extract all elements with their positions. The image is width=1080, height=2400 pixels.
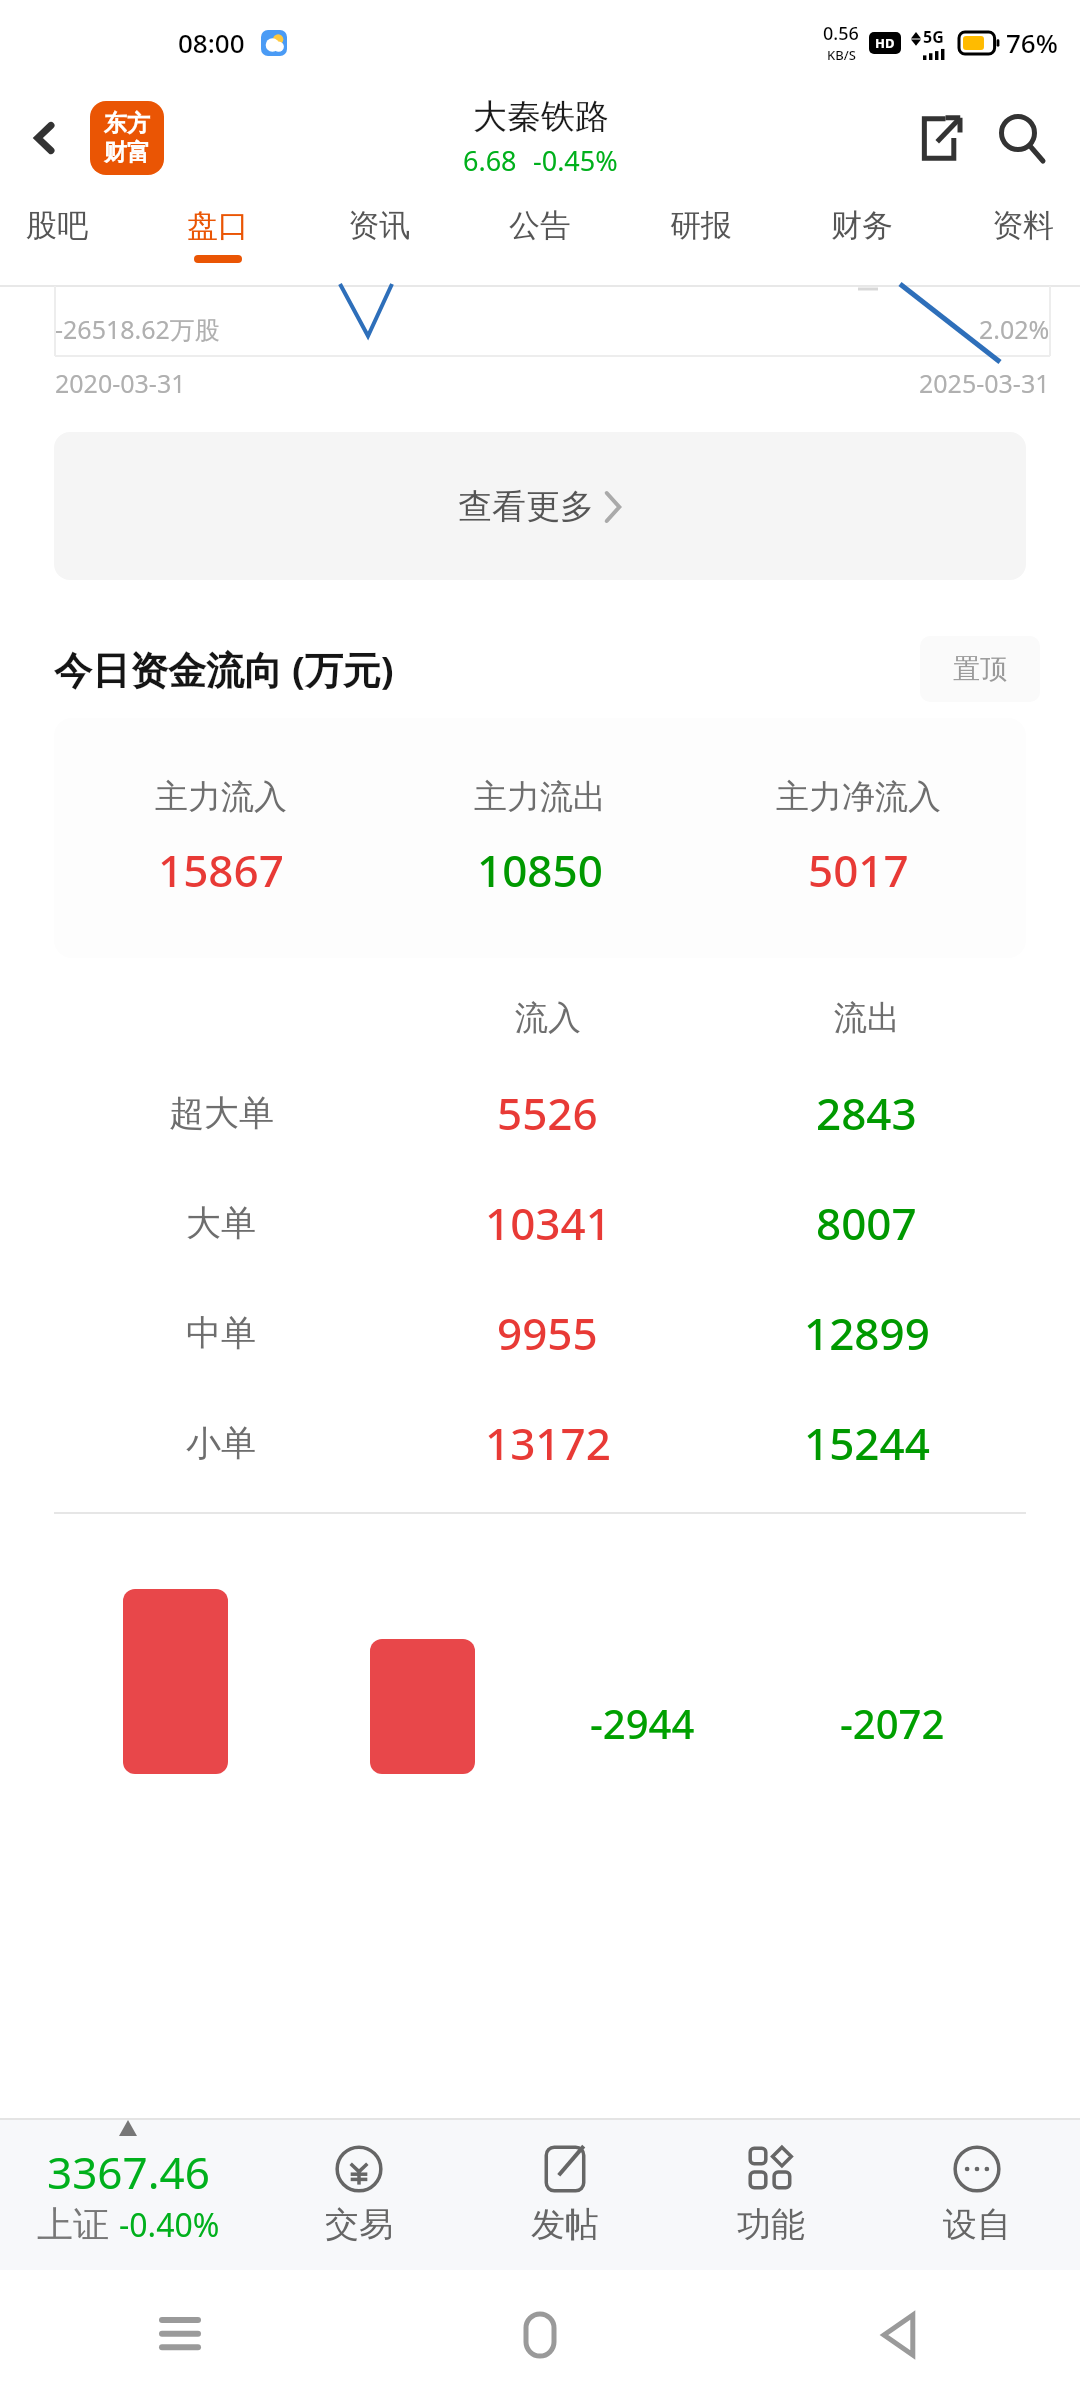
staticText: 6.68: [463, 142, 517, 179]
staticText: 3367.46: [47, 2142, 210, 2202]
button[interactable]: 公告: [509, 192, 571, 255]
button[interactable]: 盘口: [187, 192, 249, 263]
staticText: 9955: [497, 1303, 598, 1363]
staticText: 主力流出: [474, 776, 606, 818]
staticText: 5017: [808, 840, 909, 900]
staticText: 设自: [943, 2203, 1011, 2246]
staticText: 76%: [1006, 25, 1058, 60]
staticText: 15244: [804, 1413, 930, 1473]
button[interactable]: 资料: [992, 192, 1054, 255]
button[interactable]: Search: [984, 100, 1060, 176]
staticText: 小单: [186, 1421, 256, 1465]
button[interactable]: 资讯: [348, 192, 410, 255]
button[interactable]: Home: [360, 2270, 720, 2400]
button[interactable]: Recents: [0, 2270, 360, 2400]
staticText: 财务: [831, 206, 893, 245]
staticText: -26518.62万股: [55, 312, 220, 346]
staticText: 资讯: [348, 206, 410, 245]
staticText: 交易: [325, 2203, 393, 2246]
button[interactable]: 发帖: [462, 2118, 668, 2270]
staticText: -2944: [590, 1696, 695, 1750]
staticText: 股吧: [26, 206, 88, 245]
staticText: 10341: [485, 1193, 611, 1253]
button[interactable]: 财务: [831, 192, 893, 255]
staticText: -2072: [840, 1696, 945, 1750]
button[interactable]: 主力流入: [54, 718, 1026, 958]
staticText: 财富: [104, 138, 150, 167]
staticText: 13172: [485, 1413, 611, 1473]
staticText: -0.45%: [533, 142, 618, 179]
staticText: 大单: [186, 1201, 256, 1245]
button[interactable]: 3367.46: [0, 2118, 256, 2270]
button[interactable]: Share: [902, 100, 978, 176]
button[interactable]: 股吧: [26, 192, 88, 255]
staticText: 功能: [737, 2203, 805, 2246]
staticText: 查看更多: [458, 485, 594, 528]
staticText: 超大单: [169, 1091, 274, 1135]
staticText: 公告: [509, 206, 571, 245]
button[interactable]: 研报: [670, 192, 732, 255]
staticText: 大秦铁路: [473, 95, 609, 138]
staticText: 置顶: [953, 652, 1007, 686]
staticText: 2843: [816, 1083, 917, 1143]
staticText: 12899: [804, 1303, 930, 1363]
staticText: 流出: [834, 997, 900, 1039]
button[interactable]: Back: [720, 2270, 1080, 2400]
button[interactable]: 查看更多: [54, 432, 1026, 580]
button[interactable]: 超大单: [54, 1058, 1026, 1168]
staticText: 15867: [158, 840, 284, 900]
staticText: 研报: [670, 206, 732, 245]
staticText: 2020-03-31: [55, 366, 186, 394]
staticText: 5526: [497, 1083, 598, 1143]
staticText: 08:00: [178, 25, 245, 60]
staticText: 资料: [992, 206, 1054, 245]
staticText: 中单: [186, 1311, 256, 1355]
button[interactable]: 交易: [256, 2118, 462, 2270]
staticText: 主力净流入: [776, 776, 941, 818]
button[interactable]: 设自: [874, 2118, 1080, 2270]
staticText: 8007: [816, 1193, 917, 1253]
button[interactable]: 中单: [54, 1278, 1026, 1388]
staticText: 盘口: [187, 206, 249, 245]
button[interactable]: East Money: [90, 101, 164, 175]
staticText: 今日资金流向 (万元): [54, 643, 394, 695]
staticText: 主力流入: [155, 776, 287, 818]
staticText: 东方: [104, 109, 150, 138]
staticText: 5G: [923, 26, 944, 48]
button[interactable]: Back: [12, 105, 78, 171]
staticText: 0.56: [823, 21, 859, 46]
button[interactable]: 功能: [668, 2118, 874, 2270]
staticText: 发帖: [531, 2203, 599, 2246]
button[interactable]: 小单: [54, 1388, 1026, 1498]
staticText: 上证: [37, 2202, 109, 2247]
staticText: 10850: [477, 840, 603, 900]
button[interactable]: 置顶: [920, 636, 1040, 702]
staticText: 流入: [515, 997, 581, 1039]
button[interactable]: 大单: [54, 1168, 1026, 1278]
staticText: HD: [875, 34, 895, 52]
staticText: -0.40%: [119, 2203, 220, 2247]
staticText: 2.02%: [979, 312, 1050, 346]
staticText: KB/S: [827, 46, 856, 64]
staticText: 2025-03-31: [919, 366, 1050, 394]
